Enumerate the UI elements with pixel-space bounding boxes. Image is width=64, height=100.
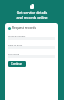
button[interactable]: Request records: [5, 25, 58, 31]
staticText: Service number: [8, 34, 26, 37]
staticText: Continue: [11, 62, 23, 66]
staticText: Get service details: [6, 10, 58, 15]
staticText: and records online: [6, 15, 58, 20]
button[interactable]: Continue: [8, 61, 26, 67]
staticText: Date of birth: [8, 43, 23, 46]
staticText: Request records: [12, 26, 36, 30]
staticText: Full name: [8, 52, 19, 55]
button[interactable]: Date of birth: [5, 42, 58, 50]
button[interactable]: Service number: [5, 33, 58, 41]
button[interactable]: Full name: [5, 51, 58, 59]
other: Service record: [30, 4, 34, 9]
